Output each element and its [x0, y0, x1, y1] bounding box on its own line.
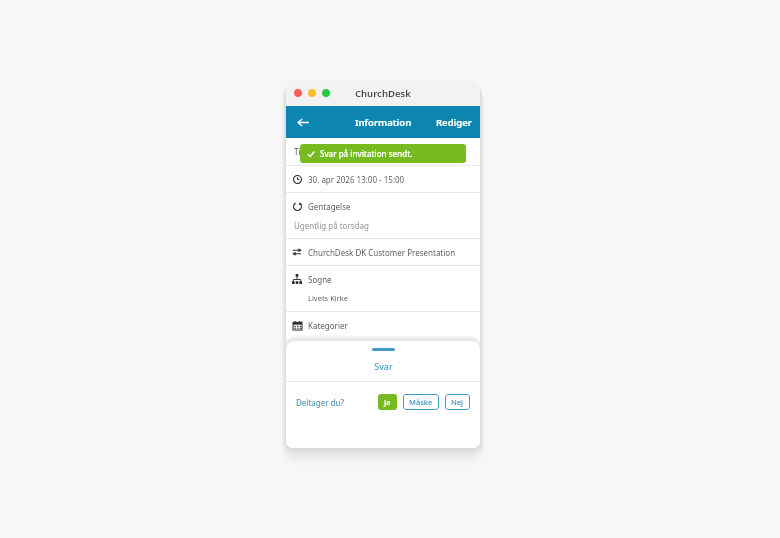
staticText: Livets Kirke	[308, 293, 349, 303]
staticText: ChurchDesk	[355, 87, 411, 100]
button[interactable]: Nej	[445, 394, 470, 410]
button[interactable]: Gentagelse	[286, 193, 480, 238]
staticText: Kategorier	[308, 320, 348, 331]
staticText: Ugentlig på torsdag	[294, 220, 369, 231]
staticText: Svar	[374, 360, 393, 372]
button[interactable]: Kategorier	[286, 312, 480, 357]
button[interactable]: Måske	[403, 394, 439, 410]
staticText: ChurchDesk DK Customer Presentation	[308, 247, 456, 258]
button[interactable]: 30. apr 2026 13:00 - 15:00	[286, 166, 480, 192]
staticText: Rediger	[436, 116, 472, 129]
staticText: Sogne	[308, 274, 332, 285]
staticText: Svar på invitation sendt.	[320, 148, 413, 159]
button[interactable]: Rediger	[428, 110, 480, 135]
staticText: 30. apr 2026 13:00 - 15:00	[308, 174, 405, 185]
button[interactable]: Ja	[378, 394, 397, 410]
staticText: Nej	[451, 397, 464, 407]
button[interactable]: Back	[292, 111, 314, 133]
button[interactable]: Sogne	[286, 266, 480, 311]
button[interactable]: Svar	[286, 360, 480, 372]
staticText: Ja	[384, 397, 391, 407]
button[interactable]: Titel	[286, 138, 480, 165]
staticText: Måske	[409, 397, 433, 407]
staticText: Gentagelse	[308, 201, 351, 212]
staticText: Deltager du?	[296, 397, 344, 408]
staticText: Titel	[294, 146, 310, 157]
staticText: Information	[355, 116, 412, 129]
button[interactable]: ChurchDesk DK Customer Presentation	[286, 239, 480, 265]
staticText: Kirkecafe	[315, 339, 348, 349]
